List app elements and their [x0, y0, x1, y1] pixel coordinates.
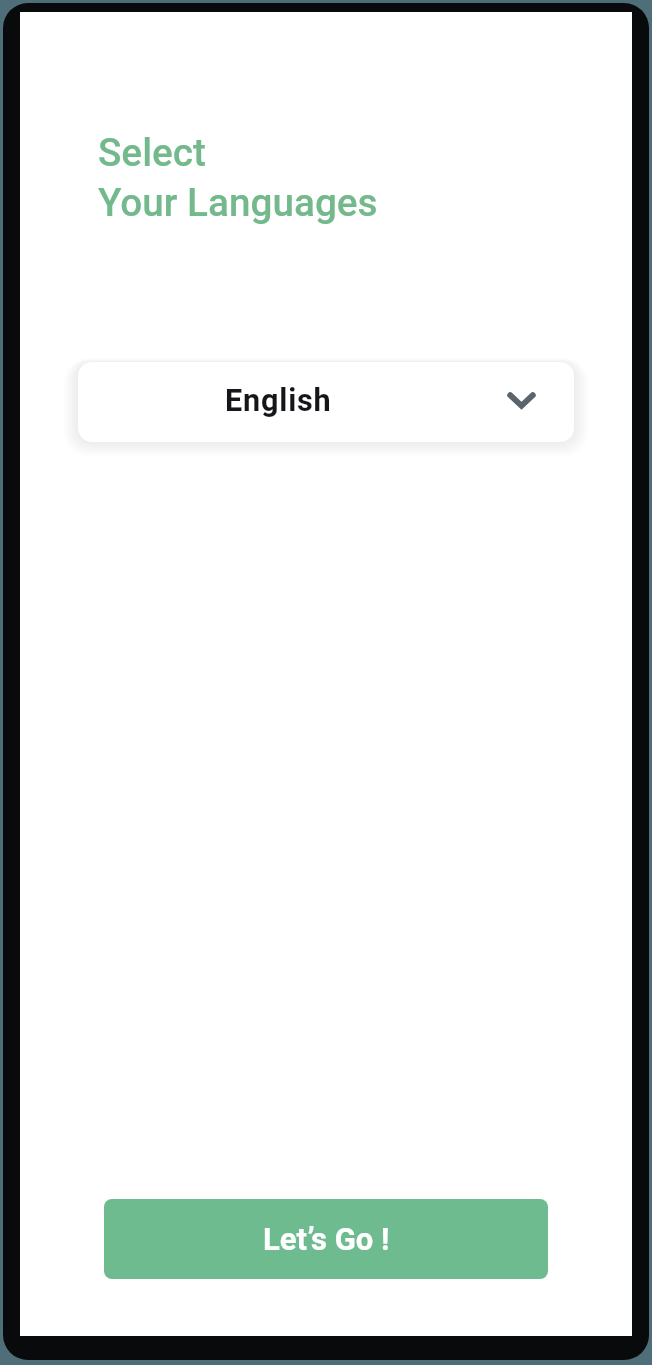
button[interactable]: Let’s Go ! — [104, 1199, 548, 1279]
button[interactable]: English — [78, 362, 574, 442]
staticText: Your Languages — [98, 180, 378, 225]
staticText: Let’s Go ! — [263, 1221, 390, 1257]
other: Expand language list — [507, 392, 536, 409]
staticText: Select — [98, 130, 206, 175]
staticText: English — [225, 383, 332, 419]
